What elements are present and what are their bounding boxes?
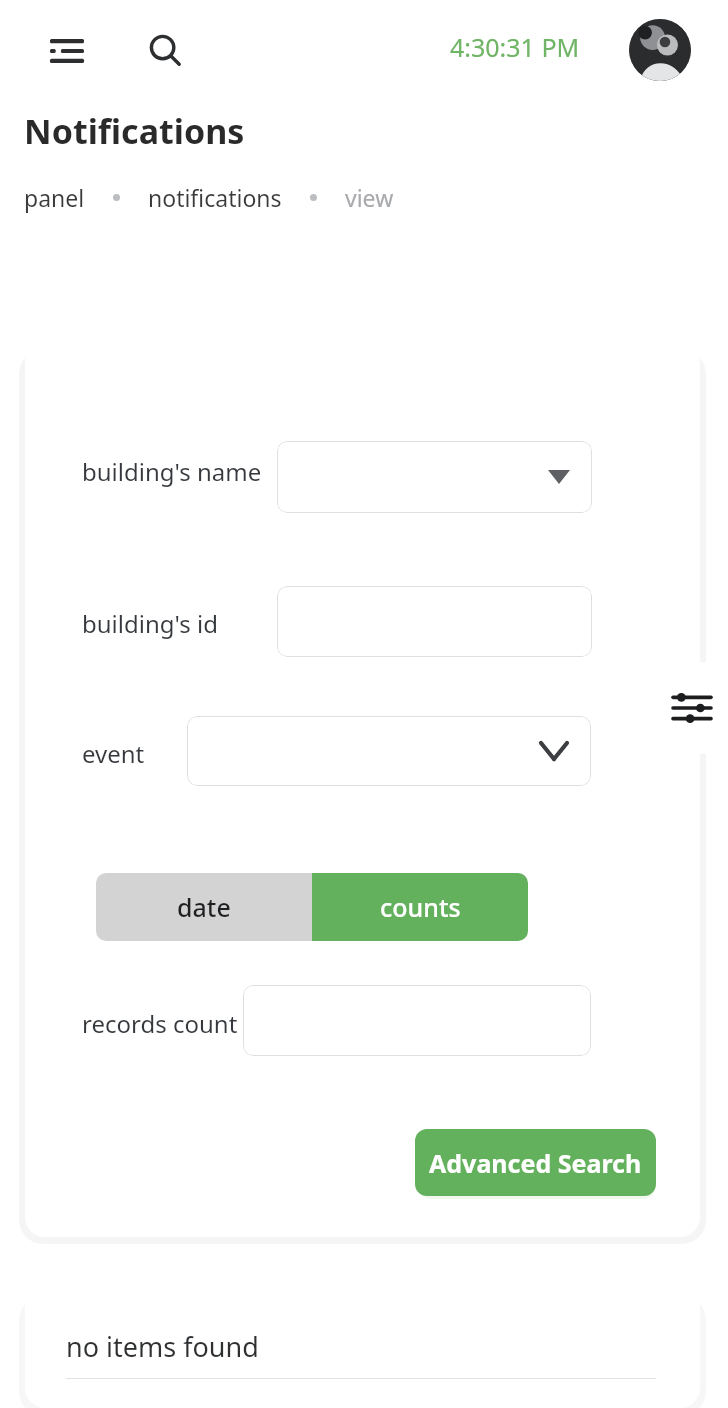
button[interactable]: Search (136, 22, 194, 80)
staticText: records count (82, 1007, 238, 1040)
staticText: building's name (82, 455, 262, 488)
staticText: no items found (66, 1328, 259, 1365)
staticText: Advanced Search (429, 1146, 642, 1180)
staticText: Notifications (24, 108, 245, 154)
button[interactable]: building's id input (277, 586, 592, 657)
staticText: date (177, 890, 231, 924)
staticText: 4:30:31 PM (450, 30, 580, 64)
staticText: view (345, 182, 394, 213)
button[interactable]: Filters (654, 662, 728, 754)
button[interactable]: Advanced Search (415, 1129, 656, 1196)
button[interactable]: date (96, 873, 312, 941)
staticText: building's id (82, 607, 218, 640)
button[interactable]: Select building's name (277, 441, 592, 513)
button[interactable]: counts (312, 873, 528, 941)
button[interactable]: panel (24, 182, 85, 213)
button[interactable]: Select event (187, 716, 591, 786)
button[interactable]: notifications (148, 182, 282, 213)
staticText: counts (380, 890, 461, 924)
button[interactable]: records count input (243, 985, 591, 1056)
button[interactable]: Menu (38, 22, 96, 80)
button[interactable]: Profile (629, 19, 691, 81)
staticText: event (82, 737, 145, 770)
